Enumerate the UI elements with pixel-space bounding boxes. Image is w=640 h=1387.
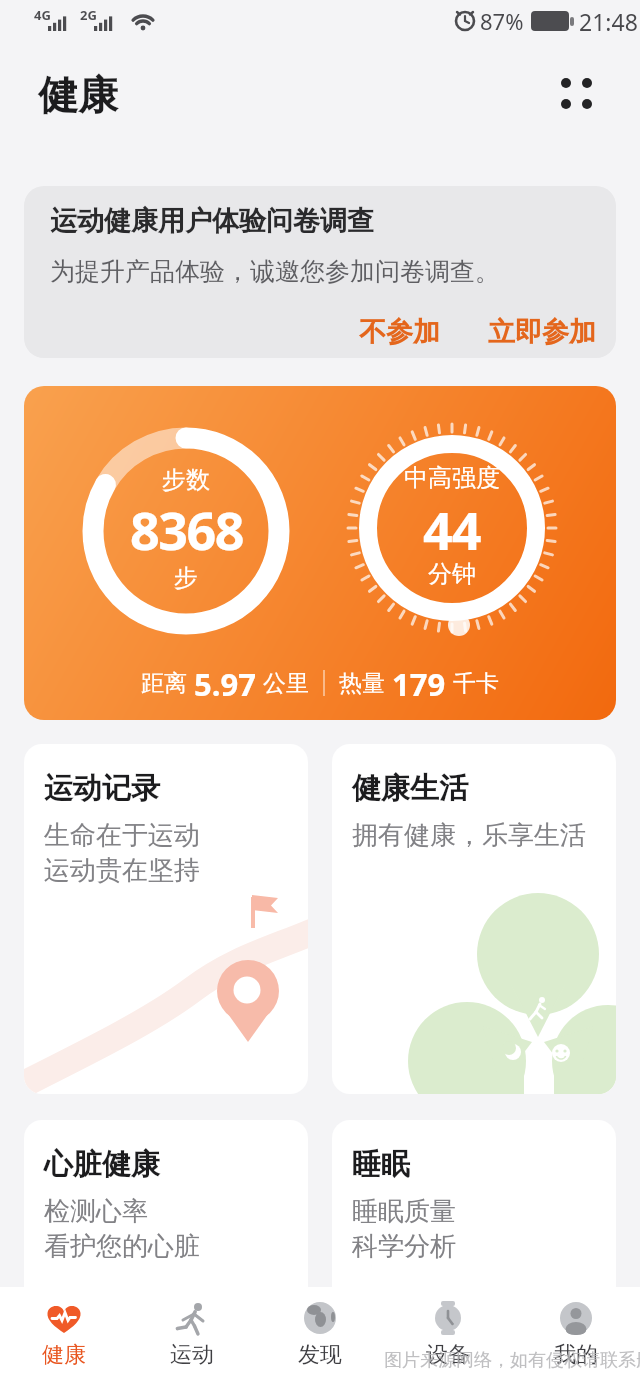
staticText: 睡眠 [352,1146,410,1183]
staticText: 生命在于运动 运动贵在坚持 [44,819,200,887]
staticText: 分钟 [428,559,476,589]
staticText: 立即参加 [488,315,596,349]
staticText: 4G [34,6,51,24]
button[interactable]: 设备 [384,1287,512,1369]
staticText: 千卡 [453,669,499,698]
staticText: 87% [480,6,524,36]
staticText: 8368 [130,494,243,564]
staticText: 设备 [426,1341,470,1369]
staticText: 179 [392,663,446,703]
staticText: 运动健康用户体验问卷调查 [50,204,374,238]
staticText: 检测心率 看护您的心脏 [44,1195,200,1263]
staticText: 21:48 [579,6,638,37]
staticText: 健康 [38,70,118,120]
staticText: 图片来源网络，如有侵权请联系删除 [384,1349,640,1372]
staticText: 公里 [263,669,309,698]
button[interactable]: 运动 [128,1287,256,1369]
staticText: 距离 [141,669,187,698]
button[interactable]: 运动记录 [24,744,308,1094]
staticText: 步 [174,563,198,593]
staticText: 不参加 [359,315,440,349]
button[interactable]: 健康 [0,1287,128,1369]
staticText: 中高强度 [404,463,500,493]
button[interactable]: 不参加 [359,315,440,349]
staticText: 运动记录 [44,770,160,807]
staticText: 44 [423,494,481,564]
staticText: 健康 [42,1341,86,1369]
staticText: 运动 [170,1341,214,1369]
button[interactable]: 健康生活 [332,744,616,1094]
staticText: 心脏健康 [44,1146,160,1183]
button[interactable] [554,71,598,115]
staticText: 睡眠质量 科学分析 [352,1195,456,1263]
button[interactable]: 立即参加 [488,315,596,349]
staticText: 发现 [298,1341,342,1369]
staticText: 拥有健康，乐享生活 [352,819,586,852]
staticText: 步数 [162,465,210,495]
staticText: 5.97 [194,663,256,703]
button[interactable]: 运动健康用户体验问卷调查 [24,186,616,358]
staticText: 热量 [339,669,385,698]
button[interactable]: 步数 [24,386,616,720]
staticText: 2G [80,6,97,24]
button[interactable]: 睡眠 [332,1120,616,1287]
button[interactable]: 发现 [256,1287,384,1369]
button[interactable]: 我的 [512,1287,640,1369]
staticText: 我的 [554,1341,598,1369]
staticText: 健康生活 [352,770,468,807]
button[interactable]: 心脏健康 [24,1120,308,1287]
staticText: 为提升产品体验，诚邀您参加问卷调查。 [50,256,500,287]
